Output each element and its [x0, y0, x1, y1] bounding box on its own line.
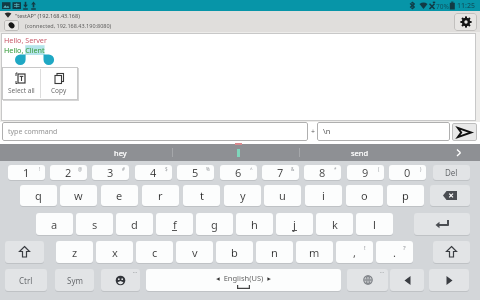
button[interactable]: j — [276, 213, 313, 235]
staticText: $ — [165, 166, 168, 172]
staticText: hey — [114, 148, 127, 158]
button[interactable]: r — [142, 185, 179, 206]
staticText: , — [353, 245, 356, 260]
staticText: % — [206, 166, 210, 172]
staticText: … — [380, 269, 384, 275]
button[interactable]: c — [136, 241, 173, 263]
staticText: 0 — [404, 165, 411, 180]
staticText: t — [200, 188, 204, 203]
button[interactable]: ◂ English(US) ▸ — [146, 269, 341, 291]
staticText: (connected, 192.168.43.190:8080) — [25, 22, 112, 29]
button[interactable]: send — [320, 144, 400, 161]
button[interactable]: y — [224, 185, 261, 206]
staticText: w — [74, 188, 83, 203]
staticText: 8 — [319, 165, 326, 180]
button[interactable]: n — [256, 241, 293, 263]
button[interactable]: 8 — [304, 165, 341, 180]
staticText: z — [72, 245, 78, 260]
staticText: g — [211, 217, 218, 232]
button[interactable]: x — [96, 241, 133, 263]
button[interactable]: e — [101, 185, 138, 206]
button[interactable]: 4 — [135, 165, 172, 180]
staticText: + — [311, 127, 316, 137]
button[interactable]: . — [376, 241, 413, 263]
button[interactable] — [230, 144, 246, 161]
button[interactable]: i — [305, 185, 342, 206]
button[interactable]: 0 — [389, 165, 426, 180]
button[interactable]: Select all — [2, 67, 40, 100]
staticText: ! — [364, 244, 366, 252]
button[interactable]: t — [183, 185, 220, 206]
button[interactable]: b — [216, 241, 253, 263]
button[interactable]: v — [176, 241, 213, 263]
button[interactable]: 9 — [347, 165, 384, 180]
button[interactable] — [414, 213, 470, 235]
button[interactable]: q — [20, 185, 57, 206]
button[interactable]: 6 — [220, 165, 257, 180]
button[interactable]: 5 — [177, 165, 214, 180]
button[interactable] — [433, 241, 470, 263]
button[interactable]: l — [356, 213, 393, 235]
staticText: ! — [39, 166, 41, 172]
staticText: 5 — [192, 165, 199, 180]
button[interactable]: 1 — [8, 165, 45, 180]
button[interactable]: h — [236, 213, 273, 235]
button[interactable] — [430, 185, 470, 206]
button[interactable]: d — [116, 213, 153, 235]
staticText: ( — [378, 166, 380, 172]
staticText: e — [116, 188, 123, 203]
staticText: Select all — [8, 86, 35, 95]
button[interactable]: \n — [317, 122, 450, 141]
staticText: 3 — [107, 165, 114, 180]
staticText: m — [309, 245, 320, 260]
button[interactable] — [390, 269, 424, 291]
staticText: \n — [323, 126, 331, 136]
staticText: k — [332, 217, 338, 232]
staticText: Hello, Server — [4, 35, 47, 45]
staticText: 9 — [362, 165, 369, 180]
button[interactable]: , — [336, 241, 373, 263]
button[interactable]: Del — [433, 165, 470, 180]
button[interactable]: z — [56, 241, 93, 263]
button[interactable]: w — [60, 185, 97, 206]
staticText: s — [92, 217, 98, 232]
staticText: ◂ English(US) ▸ — [216, 273, 271, 283]
button[interactable] — [454, 13, 477, 31]
button[interactable]: a — [36, 213, 73, 235]
staticText: c — [152, 245, 158, 260]
button[interactable]: 3 — [92, 165, 129, 180]
button[interactable]: m — [296, 241, 333, 263]
staticText: . — [393, 245, 396, 260]
button[interactable]: k — [316, 213, 353, 235]
staticText: 2 — [65, 165, 72, 180]
button[interactable]: Sym — [55, 269, 94, 291]
staticText: r — [158, 188, 163, 203]
staticText: ) — [420, 166, 422, 172]
button[interactable]: 2 — [50, 165, 87, 180]
button[interactable]: s — [76, 213, 113, 235]
staticText: 11:25 — [457, 1, 475, 11]
staticText: i — [322, 188, 325, 203]
button[interactable]: o — [346, 185, 383, 206]
button[interactable] — [452, 123, 477, 141]
button[interactable]: 7 — [262, 165, 299, 180]
staticText: f — [173, 217, 177, 232]
button[interactable]: Ctrl — [5, 269, 47, 291]
button[interactable]: … — [347, 269, 388, 291]
button[interactable]: hey — [80, 144, 160, 161]
staticText: Sym — [67, 275, 83, 286]
button[interactable]: g — [196, 213, 233, 235]
staticText: send — [351, 148, 369, 158]
button[interactable]: f — [156, 213, 193, 235]
button[interactable]: Copy — [40, 67, 78, 100]
button[interactable] — [5, 241, 44, 263]
staticText: d — [131, 217, 138, 232]
button[interactable]: type command — [2, 122, 308, 141]
staticText: 70% — [436, 2, 449, 11]
button[interactable] — [429, 269, 469, 291]
button[interactable]: p — [387, 185, 424, 206]
staticText: b — [231, 245, 238, 260]
staticText: … — [133, 269, 137, 275]
button[interactable]: … — [101, 269, 140, 291]
button[interactable]: u — [264, 185, 301, 206]
